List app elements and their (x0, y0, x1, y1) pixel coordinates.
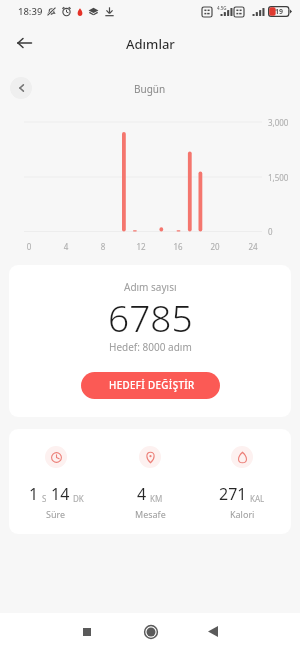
staticText: Adımlar (126, 35, 175, 53)
button[interactable]: Back (10, 29, 38, 57)
staticText: Adım sayısı (124, 280, 177, 294)
staticText: S (42, 493, 47, 504)
staticText: HEDEFİ DEĞİŞTİR (109, 379, 195, 392)
button[interactable]: 4 (105, 429, 195, 520)
staticText: 20 (205, 241, 225, 252)
staticText: 8 (93, 241, 113, 252)
staticText: KAL (250, 493, 265, 504)
button[interactable]: Back (192, 613, 233, 650)
staticText: Kalori (230, 508, 255, 520)
staticText: Süre (46, 508, 66, 520)
staticText: 1 (29, 483, 39, 505)
staticText: 4.5G (217, 5, 227, 11)
staticText: Mesafe (135, 508, 166, 520)
button[interactable]: HEDEFİ DEĞİŞTİR (81, 372, 220, 399)
staticText: 18:39 (18, 5, 43, 18)
button[interactable]: Home (130, 613, 171, 650)
button[interactable]: Previous day (10, 77, 32, 99)
staticText: 0 (19, 241, 39, 252)
staticText: 271 (219, 483, 247, 505)
button[interactable]: 1 (11, 429, 101, 520)
staticText: 3,000 (268, 117, 289, 128)
staticText: 14 (51, 483, 70, 505)
staticText: DK (73, 493, 84, 504)
staticText: 16 (168, 241, 188, 252)
staticText: 24 (243, 241, 263, 252)
staticText: Hedef: 8000 adım (109, 340, 192, 354)
staticText: 6785 (108, 292, 193, 342)
staticText: 4 (137, 483, 147, 505)
staticText: Bugün (134, 82, 166, 96)
staticText: 12 (131, 241, 151, 252)
staticText: 1,500 (268, 172, 289, 183)
staticText: 19 (275, 7, 284, 17)
button[interactable]: 271 (197, 429, 287, 520)
staticText: 0 (268, 226, 273, 237)
staticText: 4 (56, 241, 76, 252)
button[interactable]: Recent apps (66, 613, 107, 650)
staticText: KM (150, 493, 163, 504)
